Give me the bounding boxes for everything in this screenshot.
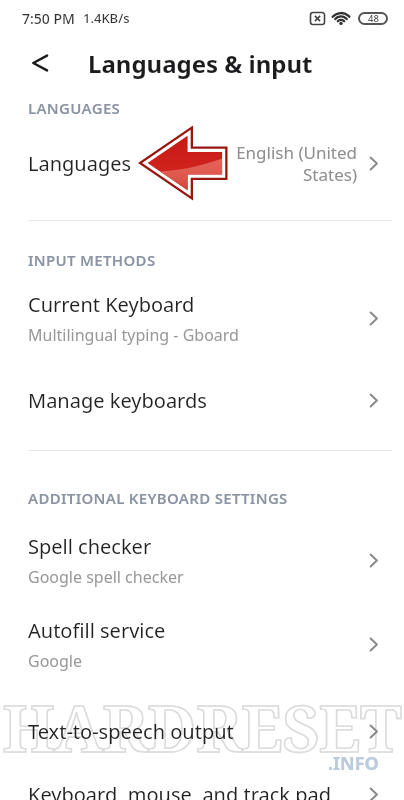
button[interactable]: Autofill service: [0, 614, 404, 674]
staticText: 1.4KB/s: [83, 9, 130, 27]
button[interactable]: Keyboard, mouse, and track pad: [0, 764, 404, 800]
staticText: Autofill service: [28, 617, 166, 644]
button[interactable]: Spell checker: [0, 530, 404, 590]
staticText: Current Keyboard: [28, 291, 195, 318]
staticText: English (United States): [221, 141, 357, 186]
staticText: Manage keyboards: [28, 387, 207, 414]
staticText: Keyboard, mouse, and track pad: [28, 781, 332, 800]
staticText: Languages & input: [88, 47, 313, 80]
staticText: Languages: [28, 150, 132, 177]
staticText: Multilingual typing - Gboard: [28, 324, 239, 346]
staticText: .INFO: [328, 751, 379, 776]
staticText: 48: [368, 12, 379, 25]
button[interactable]: Manage keyboards: [0, 370, 404, 430]
staticText: INPUT METHODS: [28, 250, 156, 270]
button[interactable]: Languages: [0, 126, 404, 200]
staticText: 7:50 PM: [22, 9, 75, 28]
button[interactable]: Text-to-speech output: [0, 701, 404, 761]
button[interactable]: Current Keyboard: [0, 288, 404, 348]
staticText: Spell checker: [28, 533, 152, 560]
staticText: Text-to-speech output: [28, 718, 234, 745]
staticText: Google: [28, 650, 83, 672]
staticText: Google spell checker: [28, 566, 184, 588]
staticText: LANGUAGES: [28, 98, 121, 118]
staticText: ADDITIONAL KEYBOARD SETTINGS: [28, 488, 288, 508]
button[interactable]: [24, 47, 56, 79]
staticText: HARDRESET: [0, 684, 404, 771]
